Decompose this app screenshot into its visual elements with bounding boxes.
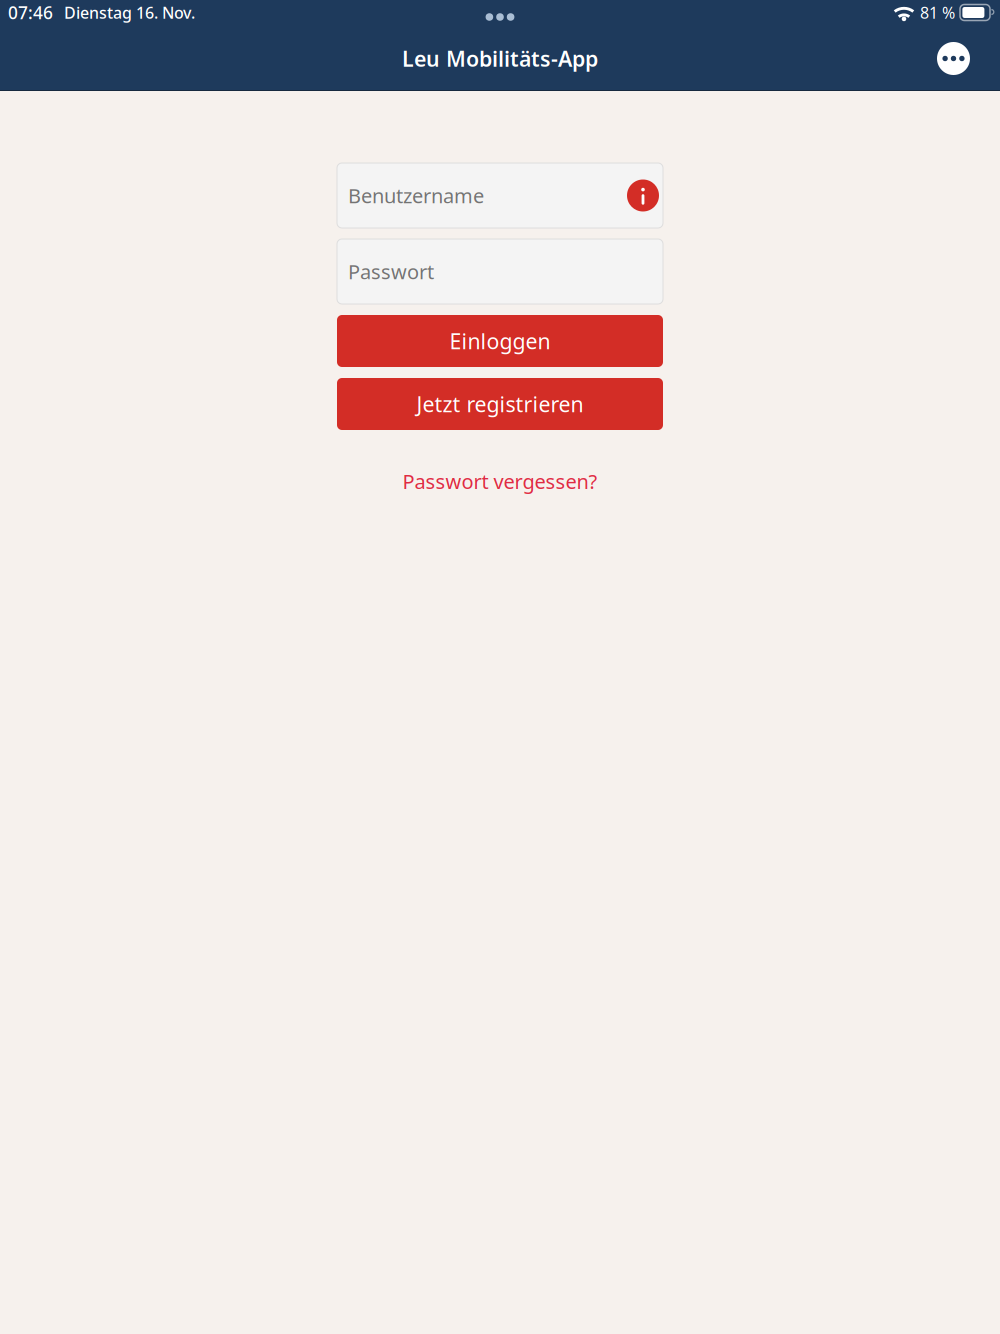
- staticText: 07:46: [8, 1, 53, 24]
- staticText: Passwort: [348, 258, 434, 285]
- staticText: Passwort vergessen?: [402, 468, 597, 495]
- button[interactable]: Passwort: [337, 239, 663, 304]
- staticText: Einloggen: [449, 327, 550, 355]
- button[interactable]: Jetzt registrieren: [337, 378, 663, 430]
- button[interactable]: Benutzername: [337, 163, 663, 228]
- button[interactable]: Passwort vergessen?: [386, 458, 613, 505]
- button[interactable]: Einloggen: [337, 315, 663, 367]
- staticText: Jetzt registrieren: [416, 390, 583, 418]
- staticText: Dienstag 16. Nov.: [64, 2, 195, 23]
- staticText: Benutzername: [348, 182, 484, 209]
- staticText: Leu Mobilitäts-App: [402, 44, 598, 73]
- button[interactable]: Weitere Optionen: [923, 34, 1000, 89]
- staticText: 81 %: [920, 2, 955, 23]
